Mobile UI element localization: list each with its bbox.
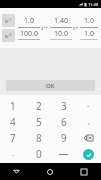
button[interactable]: 9	[51, 130, 76, 146]
staticText: 1.0	[84, 29, 94, 39]
staticText: 4	[10, 115, 16, 129]
staticText: ,	[88, 117, 90, 127]
staticText: -1	[8, 17, 12, 22]
staticText: s²+	[41, 25, 49, 32]
button[interactable]: Space	[51, 146, 76, 162]
button[interactable]: 7	[0, 130, 26, 146]
button[interactable]: 0	[26, 146, 51, 162]
staticText: s	[5, 17, 8, 25]
staticText: s+	[73, 25, 79, 32]
staticText: s	[5, 32, 8, 40]
staticText: -	[87, 101, 90, 111]
staticText: 6	[61, 115, 67, 129]
staticText: 10.0	[54, 29, 68, 39]
staticText: -2	[8, 32, 12, 37]
staticText: 1.40	[54, 16, 68, 26]
button[interactable]: ,	[76, 114, 101, 130]
staticText: 0	[36, 147, 42, 161]
button[interactable]: 8	[26, 130, 51, 146]
staticText: 2	[36, 99, 42, 113]
staticText: 7	[10, 131, 16, 145]
staticText: 9	[61, 131, 67, 145]
staticText: 5	[36, 115, 42, 129]
button[interactable]: Backspace	[76, 130, 101, 146]
button[interactable]: 2	[26, 97, 51, 114]
staticText: 100.0	[20, 29, 38, 39]
button[interactable]: 4	[0, 114, 26, 130]
button[interactable]: Home	[33, 163, 67, 180]
staticText: 1.0	[24, 16, 34, 26]
button[interactable]: s	[2, 14, 15, 27]
staticText: OK	[46, 82, 55, 90]
button[interactable]: 5	[26, 114, 51, 130]
button[interactable]: Recents	[67, 163, 101, 180]
button[interactable]: OK	[6, 80, 95, 91]
button[interactable]: Confirm	[83, 149, 94, 160]
button[interactable]: 3	[51, 97, 76, 114]
button[interactable]: Back	[0, 163, 33, 180]
staticText: 11:38	[88, 2, 99, 7]
staticText: 8	[36, 131, 42, 145]
button[interactable]: 1	[0, 97, 26, 114]
button[interactable]: -	[76, 97, 101, 114]
button[interactable]: 6	[51, 114, 76, 130]
staticText: .	[12, 149, 14, 159]
button[interactable]: s	[2, 29, 15, 42]
staticText: 1.0	[84, 16, 94, 26]
staticText: 1	[10, 99, 16, 113]
staticText: 3	[61, 99, 67, 113]
